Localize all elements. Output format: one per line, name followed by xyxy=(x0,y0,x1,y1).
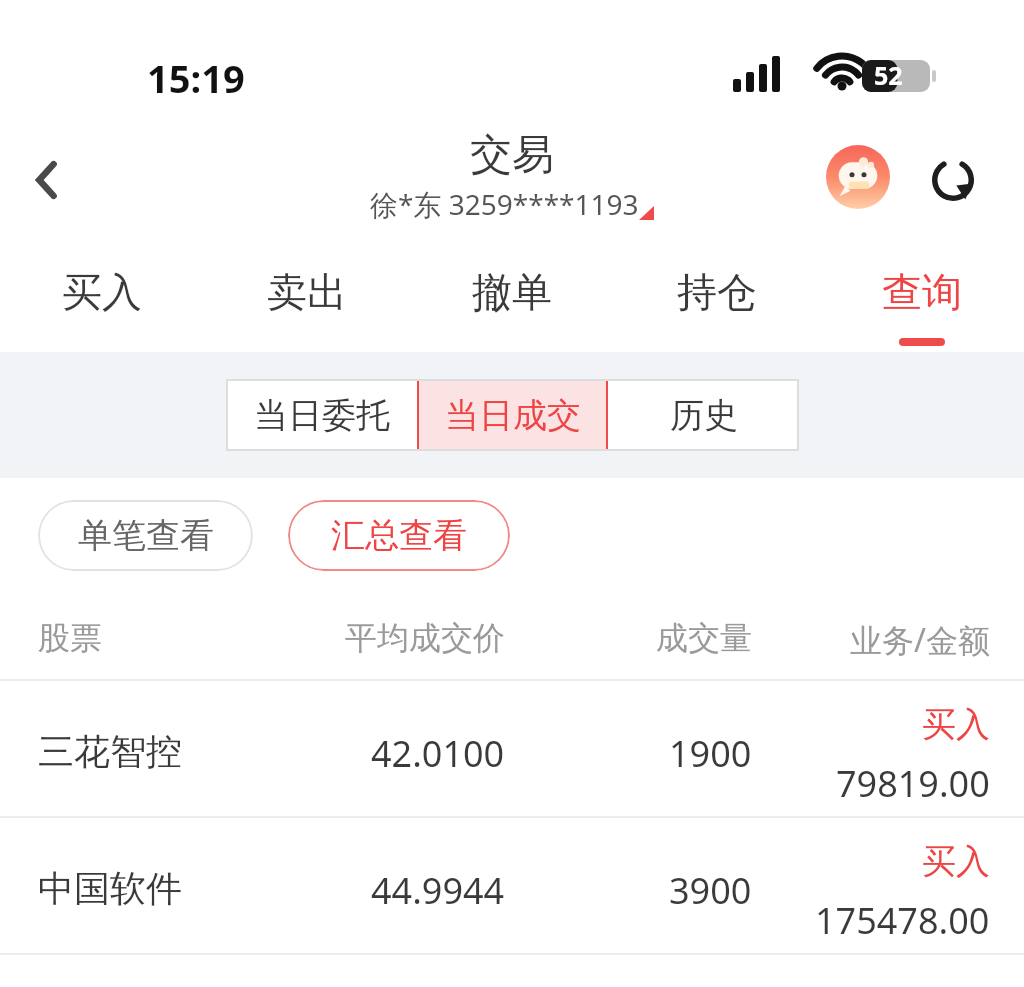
staticText: 业务/金额 xyxy=(850,618,990,662)
button[interactable]: 当日成交 xyxy=(417,379,608,451)
button[interactable]: 当日委托 xyxy=(226,379,417,451)
staticText: 买入 xyxy=(922,703,990,746)
staticText: 中国软件 xyxy=(38,866,182,911)
button[interactable]: Refresh xyxy=(916,147,990,213)
staticText: 175478.00 xyxy=(815,896,990,945)
staticText: 历史 xyxy=(670,394,738,437)
button[interactable]: Profile xyxy=(826,145,890,209)
staticText: 汇总查看 xyxy=(331,514,467,557)
staticText: 撤单 xyxy=(472,267,552,317)
staticText: 15:19 xyxy=(147,52,245,104)
staticText: 股票 xyxy=(38,618,102,658)
staticText: 徐*东 3259****1193 xyxy=(370,185,639,223)
button[interactable]: 持仓 xyxy=(614,235,819,352)
staticText: 买入 xyxy=(922,840,990,883)
button[interactable]: 卖出 xyxy=(204,235,409,352)
staticText: 平均成交价 xyxy=(345,618,505,658)
button[interactable]: 三花智控 xyxy=(0,681,1024,816)
staticText: 52 xyxy=(874,58,903,92)
staticText: 1900 xyxy=(669,729,752,778)
staticText: 交易 xyxy=(470,129,554,182)
staticText: 3900 xyxy=(669,866,752,915)
staticText: 当日委托 xyxy=(254,394,390,437)
button[interactable]: 中国软件 xyxy=(0,818,1024,953)
staticText: 买入 xyxy=(62,267,142,317)
staticText: 42.0100 xyxy=(371,729,505,778)
staticText: 卖出 xyxy=(267,267,347,317)
button[interactable]: 汇总查看 xyxy=(288,500,510,571)
staticText: 当日成交 xyxy=(445,394,581,437)
button[interactable]: 单笔查看 xyxy=(38,500,253,571)
staticText: 持仓 xyxy=(677,267,757,317)
button[interactable]: Back xyxy=(10,147,84,213)
staticText: 查询 xyxy=(882,267,962,317)
staticText: 单笔查看 xyxy=(78,514,214,557)
button[interactable]: 撤单 xyxy=(409,235,614,352)
staticText: 三花智控 xyxy=(38,729,182,774)
button[interactable]: 买入 xyxy=(0,235,204,352)
button[interactable]: 历史 xyxy=(608,379,799,451)
staticText: 成交量 xyxy=(656,618,752,658)
staticText: 44.9944 xyxy=(371,866,505,915)
staticText: 79819.00 xyxy=(836,759,990,808)
button[interactable]: 查询 xyxy=(819,235,1024,352)
